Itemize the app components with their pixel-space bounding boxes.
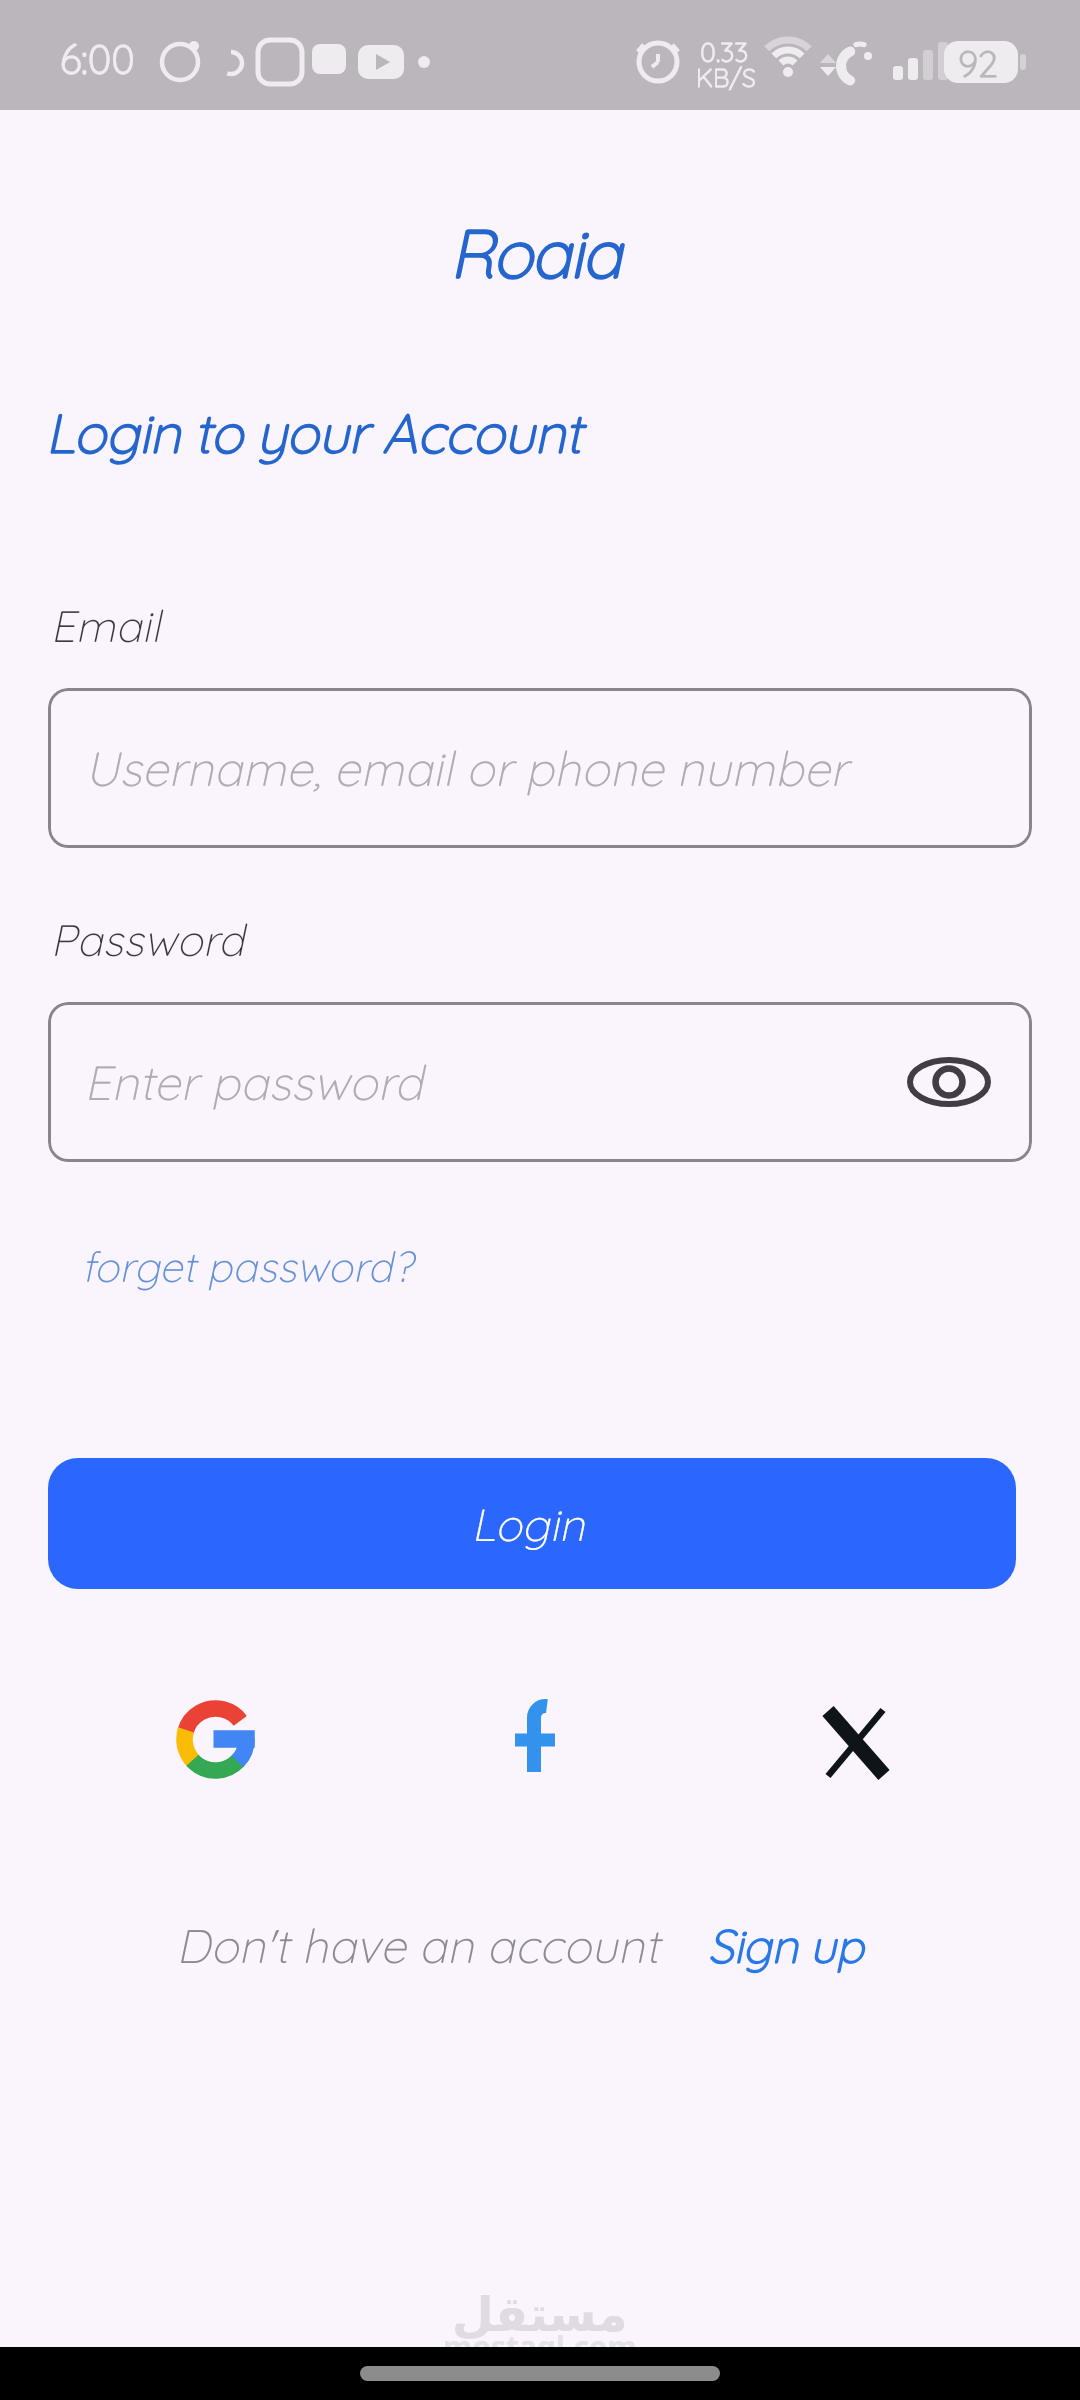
staticText: 92 — [958, 41, 998, 86]
staticText: Enter password — [88, 1052, 427, 1112]
staticText: KB/S — [696, 62, 756, 93]
staticText: 6:00 — [60, 34, 135, 84]
staticText: Email — [54, 598, 164, 653]
staticText: Password — [54, 912, 248, 967]
staticText: Username, email or phone number — [89, 738, 852, 798]
button[interactable]: Login — [48, 1458, 1016, 1589]
button[interactable]: Enter password — [48, 1002, 1032, 1162]
button[interactable]: forget password? — [85, 1240, 416, 1293]
button[interactable] — [822, 1709, 890, 1777]
staticText: Login — [475, 1496, 589, 1552]
staticText: Roaia — [455, 210, 626, 295]
button[interactable] — [176, 1700, 255, 1779]
button[interactable] — [510, 1702, 558, 1778]
button[interactable]: Sign up — [712, 1916, 868, 1975]
staticText: 0.33 — [700, 35, 749, 69]
staticText: مستقل — [452, 2286, 628, 2342]
button[interactable]: Username, email or phone number — [48, 688, 1032, 848]
staticText: Login to your Account — [50, 398, 586, 467]
staticText: Don't have an account — [180, 1916, 664, 1975]
staticText: mostaql.com — [443, 2326, 637, 2367]
